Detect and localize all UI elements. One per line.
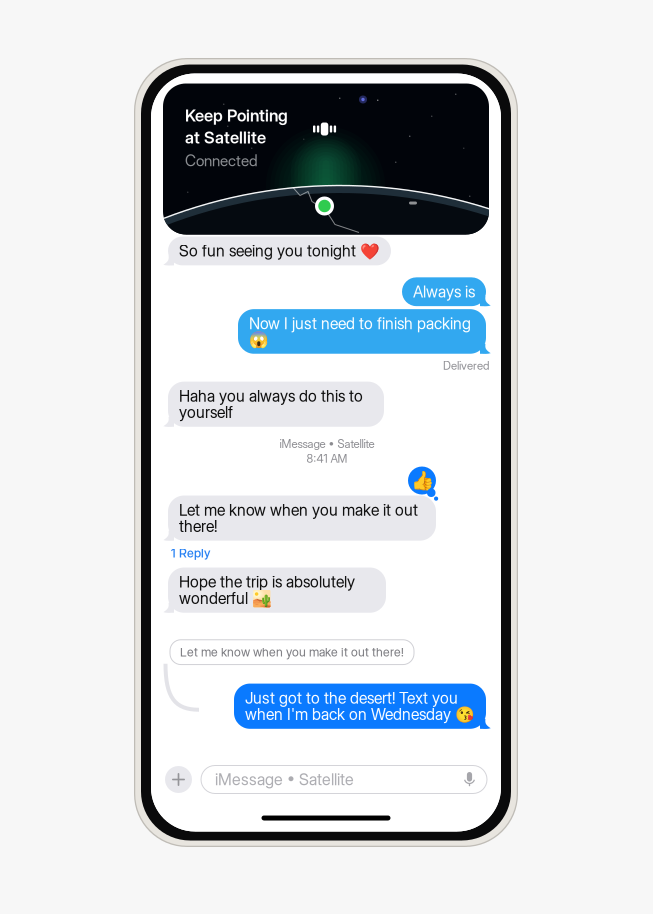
staticText: Hope the trip is absolutely wonderful 🏜️ xyxy=(179,574,355,606)
staticText: Haha you always do this to yourself xyxy=(179,388,363,420)
staticText: 👍 xyxy=(410,470,433,491)
staticText: Keep Pointing xyxy=(185,105,288,125)
staticText: Connected xyxy=(185,151,258,170)
staticText: Let me know when you make it out there! xyxy=(179,502,418,534)
staticText: Just got to the desert! Text you when I'… xyxy=(245,690,475,723)
staticText: at Satellite xyxy=(185,127,266,147)
staticText: 8:41 AM xyxy=(306,452,347,466)
staticText: Delivered xyxy=(443,359,489,373)
staticText: iMessage • Satellite xyxy=(279,437,374,451)
staticText: Always is xyxy=(413,284,475,300)
staticText: Now I just need to finish packing 😱 xyxy=(249,315,471,347)
staticText: 1 Reply xyxy=(171,546,210,560)
button[interactable]: iMessage • Satellite xyxy=(201,765,487,793)
staticText: iMessage • Satellite xyxy=(215,770,354,789)
staticText: So fun seeing you tonight ❤️ xyxy=(179,243,380,259)
button[interactable]: Add attachment xyxy=(165,766,192,793)
staticText: Let me know when you make it out there! xyxy=(180,645,404,659)
